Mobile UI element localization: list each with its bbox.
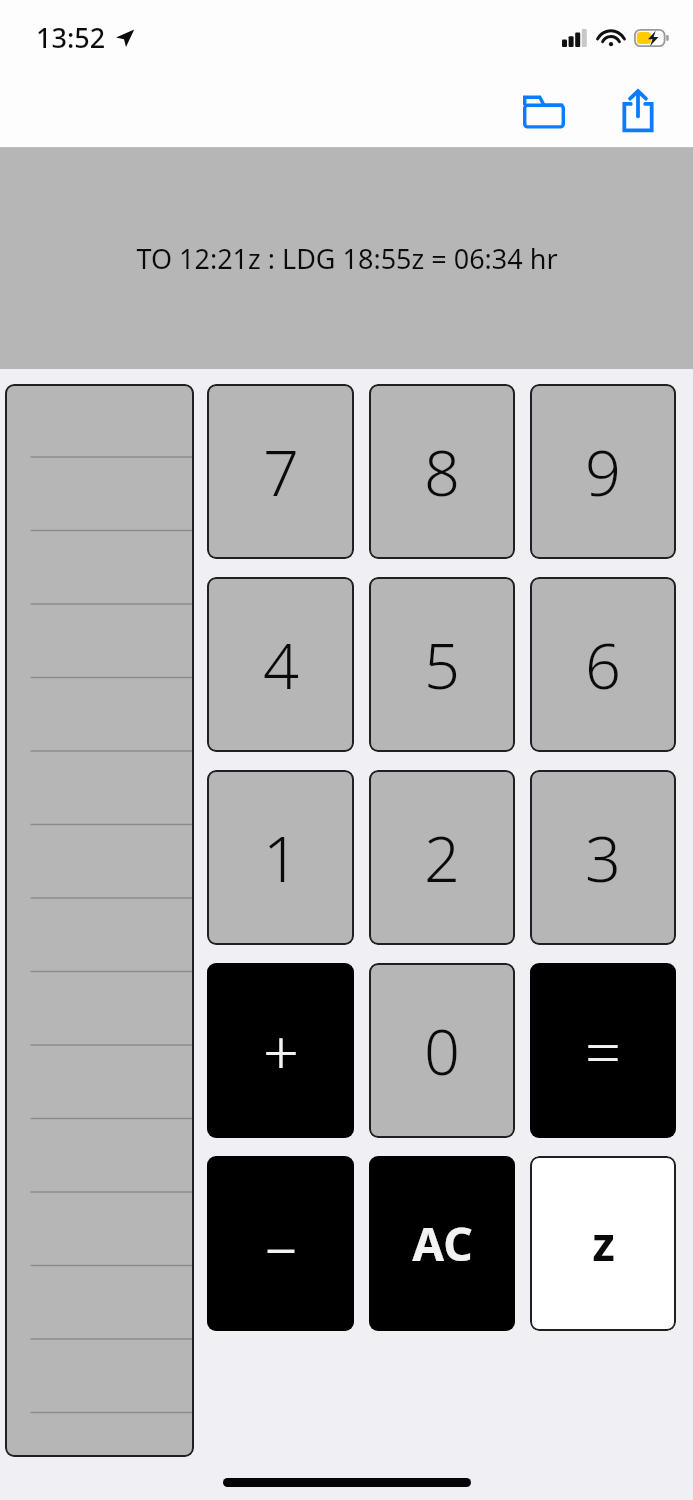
- button[interactable]: 2: [369, 770, 515, 945]
- staticText: 0: [424, 1008, 460, 1094]
- staticText: 13:52: [36, 19, 106, 56]
- staticText: TO 12:21z : LDG 18:55z = 06:34 hr: [136, 240, 558, 277]
- staticText: 5: [424, 622, 460, 708]
- button[interactable]: +: [207, 963, 354, 1138]
- button[interactable]: 1: [207, 770, 354, 945]
- staticText: z: [592, 1212, 615, 1275]
- button[interactable]: 3: [530, 770, 676, 945]
- staticText: 6: [585, 622, 621, 708]
- button[interactable]: –: [207, 1156, 354, 1331]
- staticText: =: [585, 1008, 621, 1094]
- button[interactable]: Folder: [513, 80, 575, 142]
- button[interactable]: 6: [530, 577, 676, 752]
- button[interactable]: TO 12:21z : LDG 18:55z = 06:34 hr: [0, 148, 693, 369]
- staticText: 1: [263, 815, 299, 901]
- button[interactable]: Share: [607, 80, 669, 142]
- button[interactable]: [5, 384, 194, 1457]
- staticText: 4: [263, 622, 299, 708]
- staticText: 7: [263, 429, 299, 515]
- staticText: 3: [585, 815, 621, 901]
- button[interactable]: 9: [530, 384, 676, 559]
- button[interactable]: =: [530, 963, 676, 1138]
- button[interactable]: 8: [369, 384, 515, 559]
- button[interactable]: 7: [207, 384, 354, 559]
- button[interactable]: z: [530, 1156, 676, 1331]
- staticText: 2: [424, 815, 460, 901]
- button[interactable]: AC: [369, 1156, 515, 1331]
- button[interactable]: 4: [207, 577, 354, 752]
- staticText: 8: [424, 429, 460, 515]
- staticText: 9: [585, 429, 621, 515]
- staticText: AC: [412, 1212, 473, 1275]
- staticText: –: [265, 1201, 297, 1287]
- button[interactable]: 5: [369, 577, 515, 752]
- button[interactable]: 0: [369, 963, 515, 1138]
- staticText: +: [263, 1008, 299, 1094]
